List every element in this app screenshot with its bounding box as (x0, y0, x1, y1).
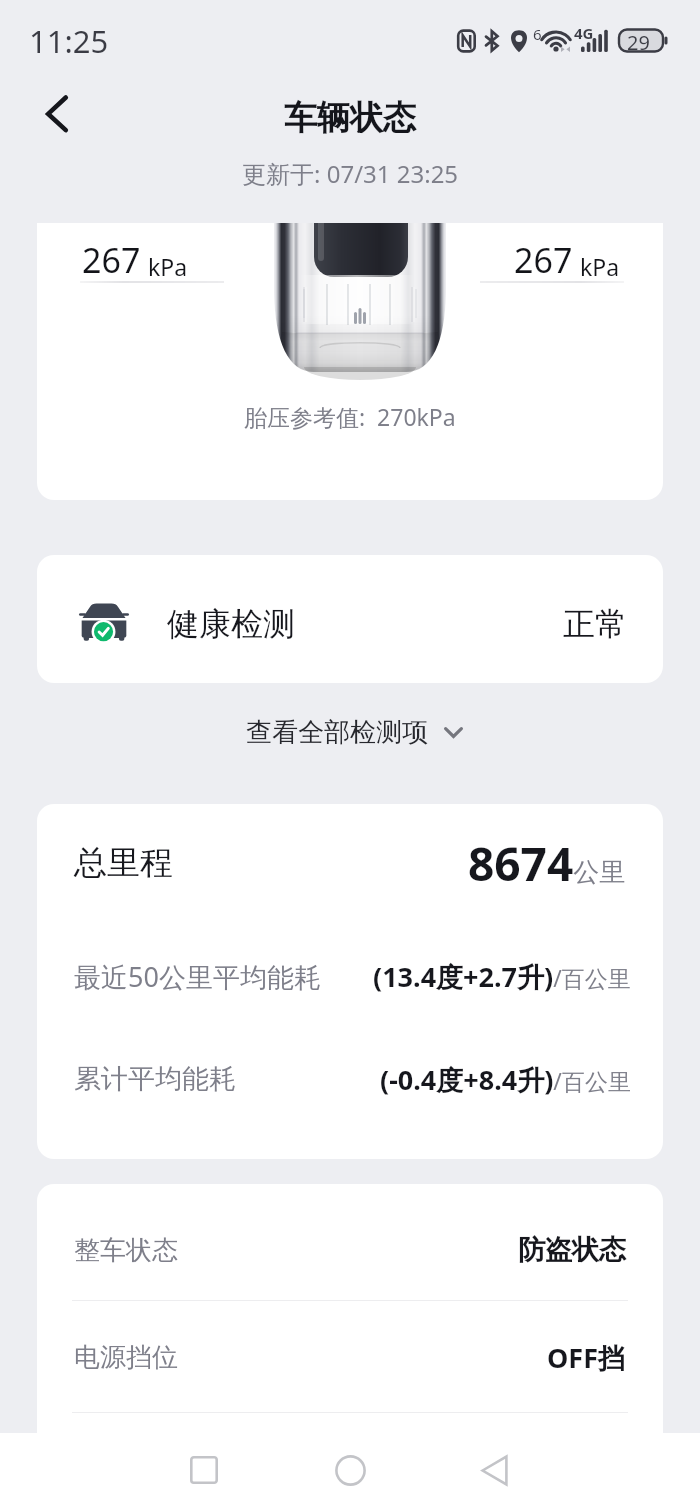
staticText: 整车状态 (74, 1234, 178, 1267)
staticText: 正常 (563, 604, 627, 644)
button[interactable]: Back (24, 85, 88, 149)
staticText: 防盗状态 (518, 1233, 626, 1267)
staticText: 11:25 (29, 20, 109, 62)
staticText: kPa (580, 251, 620, 282)
staticText: kPa (148, 251, 188, 282)
staticText: (13.4度+2.7升)/百公里 (373, 958, 631, 995)
staticText: 最近50公里平均能耗 (74, 958, 321, 995)
staticText: 查看全部检测项 (246, 716, 428, 749)
button[interactable]: Back (458, 1434, 530, 1506)
staticText: 8674公里 (468, 832, 626, 895)
staticText: 267 (82, 237, 141, 283)
staticText: 电源挡位 (74, 1341, 178, 1374)
staticText: 胎压参考值: 270kPa (244, 401, 456, 432)
staticText: 4G (574, 23, 594, 43)
staticText: (-0.4度+8.4升)/百公里 (380, 1061, 631, 1098)
button[interactable]: Home (314, 1434, 386, 1506)
staticText: 健康检测 (167, 604, 295, 644)
staticText: 6 (533, 24, 542, 44)
staticText: OFF挡 (547, 1339, 626, 1376)
staticText: 267 (514, 237, 573, 283)
button[interactable]: 电源挡位 (37, 1321, 663, 1393)
button[interactable]: 健康检测 (37, 555, 663, 683)
button[interactable]: Recent apps (168, 1434, 240, 1506)
staticText: 总里程 (74, 842, 173, 884)
staticText: 车辆状态 (284, 97, 416, 139)
button[interactable]: 查看全部检测项 (232, 707, 477, 758)
staticText: 累计平均能耗 (74, 1062, 236, 1096)
staticText: 29 (627, 29, 650, 53)
button[interactable]: 整车状态 (37, 1214, 663, 1286)
staticText: 更新于: 07/31 23:25 (242, 157, 459, 190)
